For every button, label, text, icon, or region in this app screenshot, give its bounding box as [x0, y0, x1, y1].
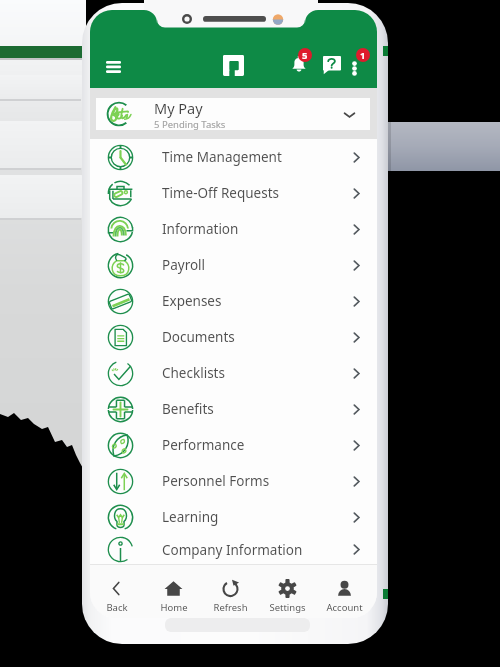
staticText: Documents — [162, 328, 235, 346]
staticText: Home — [160, 601, 188, 614]
button[interactable]: My Pay — [96, 98, 370, 130]
button[interactable]: Performance — [90, 427, 377, 463]
button[interactable]: Personnel Forms — [90, 463, 377, 499]
button[interactable]: Home — [145, 565, 202, 617]
staticText: Personnel Forms — [162, 472, 270, 490]
button[interactable]: Settings — [259, 565, 316, 617]
button[interactable]: Time-Off Requests — [90, 175, 377, 211]
staticText: Settings — [269, 601, 306, 614]
staticText: Refresh — [213, 601, 248, 614]
button[interactable]: Help — [319, 52, 345, 78]
staticText: 1 — [360, 49, 366, 62]
staticText: 5 Pending Tasks — [154, 118, 226, 130]
staticText: Checklists — [162, 364, 225, 382]
button[interactable]: Checklists — [90, 355, 377, 391]
staticText: Learning — [162, 508, 219, 526]
staticText: Benefits — [162, 400, 214, 418]
staticText: Expenses — [162, 292, 222, 310]
button[interactable]: More options — [345, 46, 371, 72]
staticText: Company Information — [162, 541, 303, 559]
button[interactable]: Information — [90, 211, 377, 247]
button[interactable]: Time Management — [90, 139, 377, 175]
button[interactable]: Documents — [90, 319, 377, 355]
staticText: Time Management — [162, 148, 282, 166]
staticText: Performance — [162, 436, 245, 454]
staticText: Payroll — [162, 256, 206, 274]
button[interactable]: Company Information — [90, 535, 377, 564]
button[interactable]: Expenses — [90, 283, 377, 319]
staticText: 5 — [302, 49, 308, 62]
button[interactable]: Refresh — [202, 565, 259, 617]
staticText: My Pay — [154, 98, 203, 118]
button[interactable]: Payroll — [90, 247, 377, 283]
button[interactable]: Learning — [90, 499, 377, 535]
staticText: Time-Off Requests — [162, 184, 279, 202]
button[interactable]: Back — [90, 565, 145, 617]
button[interactable]: Menu — [98, 51, 129, 82]
button[interactable]: Benefits — [90, 391, 377, 427]
button[interactable]: Paycom home — [219, 51, 248, 80]
staticText: Information — [162, 220, 239, 238]
button[interactable]: Notifications — [287, 46, 315, 74]
staticText: Back — [106, 601, 128, 614]
staticText: Account — [326, 601, 363, 614]
button[interactable]: Account — [316, 565, 373, 617]
